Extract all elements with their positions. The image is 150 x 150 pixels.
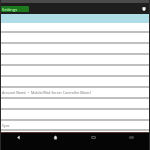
button[interactable]: [0, 14, 150, 23]
button[interactable]: [0, 55, 150, 64]
button[interactable]: Recent apps: [74, 133, 112, 141]
button[interactable]: Email: [0, 131, 150, 132]
staticText: Sync: [2, 123, 10, 128]
button[interactable]: [0, 99, 150, 108]
button[interactable]: [0, 66, 150, 75]
staticText: Settings: [2, 7, 18, 12]
button[interactable]: Screenshot: [112, 133, 150, 141]
staticText: Account Name • Mobile/Mail Server Contro…: [2, 90, 91, 95]
button[interactable]: [0, 33, 150, 42]
button[interactable]: Account Name • Mobile/Mail Server Contro…: [0, 88, 150, 97]
button[interactable]: Sync: [0, 121, 150, 129]
button[interactable]: [0, 44, 150, 53]
button[interactable]: Home: [37, 133, 74, 141]
button[interactable]: Menu: [141, 6, 147, 12]
button[interactable]: [0, 77, 150, 86]
button[interactable]: Settings: [1, 6, 29, 12]
button[interactable]: [0, 110, 150, 119]
button[interactable]: Back: [0, 133, 37, 141]
